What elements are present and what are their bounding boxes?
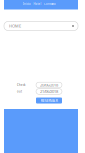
button[interactable]: HOME [4, 21, 78, 30]
staticText: Inicio [23, 2, 31, 6]
button[interactable]: 21/06/2018 [36, 89, 62, 94]
staticText: out [17, 90, 22, 93]
staticText: 21/06/2018 [40, 89, 58, 94]
button[interactable]: RESERVAR [36, 97, 62, 103]
staticText: Hotel [33, 2, 41, 6]
staticText: Contacto [44, 2, 56, 6]
staticText: 20/06/2018 [40, 82, 58, 88]
button[interactable]: 20/06/2018 [36, 82, 62, 88]
button[interactable]: Contacto [44, 2, 56, 6]
staticText: HOME [9, 23, 21, 29]
button[interactable]: Hotel [33, 2, 41, 6]
staticText: Check [17, 83, 25, 87]
staticText: RESERVAR [40, 98, 57, 103]
button[interactable]: Inicio [23, 2, 31, 6]
